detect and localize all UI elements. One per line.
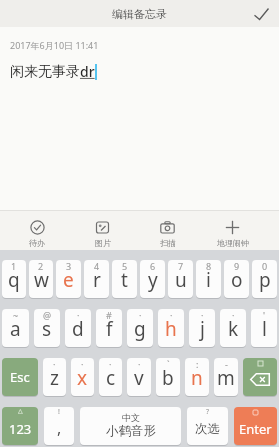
staticText: · bbox=[77, 309, 80, 321]
button[interactable]: Enter bbox=[234, 407, 277, 445]
button[interactable]: 5 bbox=[112, 260, 137, 298]
staticText: · bbox=[201, 309, 204, 321]
staticText: v bbox=[134, 365, 144, 391]
staticText: · bbox=[139, 309, 142, 321]
staticText: j bbox=[200, 316, 205, 342]
staticText: Enter bbox=[239, 420, 272, 438]
button[interactable]: ~ bbox=[2, 309, 29, 347]
staticText: 图片 bbox=[95, 238, 111, 248]
staticText: 3 bbox=[66, 260, 72, 272]
button[interactable]: 8 bbox=[196, 260, 221, 298]
staticText: # bbox=[106, 309, 112, 321]
button[interactable]: 4 bbox=[84, 260, 109, 298]
staticText: 闲来无事录 bbox=[10, 63, 80, 81]
button[interactable]: 地理闹钟 bbox=[200, 211, 265, 250]
staticText: 8 bbox=[206, 260, 212, 272]
button[interactable]: 待办 bbox=[4, 211, 70, 250]
button[interactable]: 扫描 bbox=[135, 211, 200, 250]
staticText: e bbox=[63, 267, 74, 293]
staticText: 待办 bbox=[29, 238, 45, 248]
staticText: 6 bbox=[150, 260, 156, 272]
button[interactable]: · bbox=[71, 358, 94, 396]
button[interactable]: · bbox=[43, 358, 66, 396]
staticText: x bbox=[77, 365, 88, 391]
staticText: 7 bbox=[178, 260, 184, 272]
button[interactable]: ' bbox=[251, 309, 277, 347]
staticText: 123 bbox=[9, 420, 32, 438]
staticText: s bbox=[42, 316, 52, 342]
button[interactable]: · bbox=[99, 358, 122, 396]
staticText: · bbox=[109, 358, 112, 370]
staticText: ~ bbox=[13, 309, 19, 321]
staticText: t bbox=[121, 267, 128, 293]
button[interactable]: ! bbox=[44, 407, 74, 445]
button[interactable]: - bbox=[214, 358, 238, 396]
button[interactable]: 7 bbox=[168, 260, 193, 298]
staticText: g bbox=[134, 316, 146, 342]
button[interactable]: 6 bbox=[140, 260, 165, 298]
staticText: - bbox=[225, 358, 228, 370]
staticText: 中文 bbox=[122, 412, 140, 423]
staticText: d bbox=[72, 316, 84, 342]
button[interactable] bbox=[249, 2, 273, 26]
staticText: : bbox=[196, 358, 199, 370]
staticText: p bbox=[259, 267, 271, 293]
staticText: @ bbox=[43, 309, 52, 321]
button[interactable]: @ bbox=[34, 309, 60, 347]
staticText: h bbox=[165, 316, 177, 342]
staticText: 9 bbox=[234, 260, 240, 272]
staticText: · bbox=[81, 358, 84, 370]
button[interactable] bbox=[243, 358, 277, 396]
staticText: f bbox=[106, 316, 113, 342]
button[interactable]: 中文 bbox=[80, 407, 181, 445]
staticText: , bbox=[57, 417, 62, 439]
staticText: y bbox=[148, 267, 158, 293]
button[interactable]: 9 bbox=[224, 260, 249, 298]
button[interactable]: △ bbox=[2, 407, 38, 445]
button[interactable]: 3 bbox=[56, 260, 81, 298]
staticText: Esc bbox=[10, 368, 30, 386]
staticText: · bbox=[53, 358, 56, 370]
staticText: dr bbox=[80, 62, 95, 81]
staticText: c bbox=[106, 365, 116, 391]
staticText: 1 bbox=[11, 260, 17, 272]
button[interactable]: ? bbox=[187, 407, 228, 445]
staticText: 编辑备忘录 bbox=[112, 7, 167, 21]
staticText: a bbox=[10, 316, 21, 342]
staticText: r bbox=[93, 267, 101, 293]
button[interactable]: · bbox=[220, 309, 246, 347]
button[interactable]: 2 bbox=[29, 260, 53, 298]
staticText: i bbox=[206, 267, 211, 293]
staticText: z bbox=[50, 365, 59, 391]
staticText: ? bbox=[206, 407, 210, 417]
staticText: q bbox=[8, 267, 20, 293]
staticText: · bbox=[170, 309, 173, 321]
button[interactable]: · bbox=[127, 358, 151, 396]
staticText: l bbox=[262, 316, 267, 342]
button[interactable]: Esc bbox=[2, 358, 38, 396]
button[interactable]: 图片 bbox=[70, 211, 135, 250]
button[interactable]: · bbox=[65, 309, 91, 347]
button[interactable]: 1 bbox=[2, 260, 26, 298]
button[interactable]: : bbox=[185, 358, 209, 396]
button[interactable]: · bbox=[158, 309, 184, 347]
staticText: · bbox=[232, 309, 235, 321]
staticText: · bbox=[138, 358, 141, 370]
staticText: 小鹤音形 bbox=[106, 423, 156, 439]
button[interactable]: 0 bbox=[252, 260, 277, 298]
button[interactable]: ` bbox=[156, 358, 180, 396]
staticText: b bbox=[162, 365, 174, 391]
staticText: ` bbox=[167, 358, 170, 370]
staticText: 0 bbox=[262, 260, 268, 272]
button[interactable]: · bbox=[127, 309, 153, 347]
button[interactable]: # bbox=[96, 309, 122, 347]
staticText: k bbox=[228, 316, 239, 342]
staticText: w bbox=[34, 267, 49, 293]
staticText: 2 bbox=[38, 260, 44, 272]
staticText: 5 bbox=[122, 260, 128, 272]
staticText: o bbox=[231, 267, 243, 293]
staticText: 次选 bbox=[195, 421, 220, 437]
staticText: ' bbox=[263, 309, 266, 321]
button[interactable]: · bbox=[189, 309, 215, 347]
staticText: 2017年6月10日 11:41 bbox=[10, 39, 99, 51]
